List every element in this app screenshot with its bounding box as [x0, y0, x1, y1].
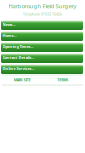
staticText: Telephone 01933 76426 — [23, 12, 62, 16]
staticText: MAIN SITE — [14, 78, 31, 82]
staticText: Contact Details... — [3, 55, 35, 60]
staticText: TERMS — [57, 78, 68, 82]
button[interactable]: News... — [1, 20, 83, 30]
staticText: Home... — [3, 33, 17, 38]
button[interactable]: TERMS — [42, 75, 83, 84]
staticText: News... — [3, 22, 16, 27]
staticText: Opening Times... — [3, 44, 34, 49]
button[interactable]: Opening Times... — [1, 42, 83, 52]
staticText: Harborough Field Surgery — [8, 2, 76, 10]
staticText: Online Services... — [3, 66, 35, 71]
button[interactable]: MAIN SITE — [2, 75, 42, 84]
button[interactable]: Home... — [1, 31, 83, 41]
button[interactable]: Online Services... — [1, 64, 83, 74]
button[interactable]: Contact Details... — [1, 53, 83, 63]
